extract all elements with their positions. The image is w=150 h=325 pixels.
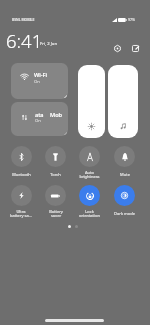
button[interactable]: Ultra battery sa... <box>4 185 38 219</box>
staticText: Mob <box>50 111 63 119</box>
staticText: 97% <box>128 17 136 22</box>
button[interactable]: Battery saver <box>38 185 72 219</box>
staticText: On <box>34 78 41 84</box>
staticText: ata <box>35 111 44 119</box>
button[interactable]: Dark mode <box>107 185 141 216</box>
button[interactable]: Mute <box>107 146 141 177</box>
staticText: On <box>35 117 42 123</box>
button[interactable]: Wi-Fi <box>11 63 68 99</box>
staticText: Torch <box>50 172 61 177</box>
staticText: Dark mode <box>114 211 135 216</box>
button[interactable]: Edit <box>129 42 142 55</box>
staticText: BSNL MOBILE <box>12 17 35 22</box>
staticText: Mute <box>120 172 130 177</box>
staticText: 6:41 <box>6 28 43 53</box>
staticText: Ultra battery sa... <box>10 209 32 219</box>
button[interactable]: Media volume <box>108 65 138 138</box>
button[interactable]: Bluetooth <box>4 146 38 177</box>
button[interactable]: Torch <box>38 146 72 177</box>
button[interactable]: Auto brightness <box>72 146 106 180</box>
staticText: Wi-Fi <box>34 71 48 79</box>
staticText: Battery saver <box>49 209 63 219</box>
button[interactable]: ata <box>11 102 68 136</box>
staticText: Bluetooth <box>12 172 31 177</box>
button[interactable]: Brightness <box>78 65 105 138</box>
button[interactable]: Settings <box>111 42 124 55</box>
button[interactable]: Lock orientation <box>72 185 106 219</box>
staticText: Auto brightness <box>79 170 100 180</box>
staticText: Fri, 2 Jun <box>40 41 57 47</box>
staticText: Lock orientation <box>79 209 100 219</box>
